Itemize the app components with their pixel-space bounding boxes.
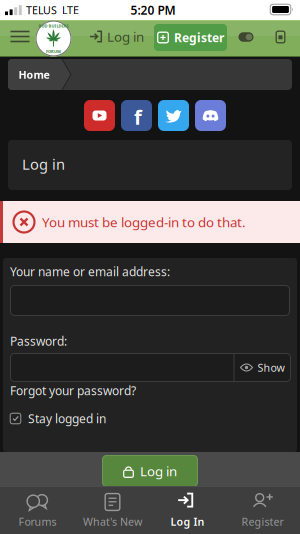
button[interactable] xyxy=(84,100,115,131)
button[interactable]: What's New xyxy=(75,486,150,534)
button[interactable]: Forgot your password? xyxy=(10,382,136,398)
staticText: Home xyxy=(18,67,49,82)
staticText: You must be logged-in to do that. xyxy=(42,213,246,231)
staticText: Stay logged in xyxy=(28,410,106,426)
button[interactable]: Log in xyxy=(102,455,197,486)
button[interactable]: Register xyxy=(225,486,300,534)
staticText: Your name or email address: xyxy=(10,263,170,279)
button[interactable]: Log in xyxy=(90,28,144,45)
button[interactable]: Register xyxy=(154,24,227,51)
button[interactable] xyxy=(238,32,253,42)
button[interactable] xyxy=(10,30,29,42)
staticText: TELUS xyxy=(26,3,57,17)
staticText: Log In xyxy=(170,514,204,529)
staticText: Forgot your password? xyxy=(10,382,136,398)
button[interactable]: f xyxy=(121,100,152,131)
staticText: Register xyxy=(174,29,224,45)
staticText: LTE xyxy=(62,3,79,17)
button[interactable]: Show xyxy=(234,353,291,382)
staticText: Show xyxy=(257,360,284,375)
staticText: FORUM xyxy=(46,49,61,54)
staticText: 5:20 PM xyxy=(130,2,175,18)
staticText: Log in xyxy=(22,154,65,174)
staticText: What's New xyxy=(83,514,142,529)
staticText: Forums xyxy=(18,514,56,529)
staticText: Password: xyxy=(10,333,67,349)
staticText: BUD BUILDERS xyxy=(38,23,68,29)
button[interactable]: Log In xyxy=(150,486,225,534)
button[interactable] xyxy=(275,30,285,43)
button[interactable]: BUD BUILDERS xyxy=(35,20,71,56)
button[interactable] xyxy=(158,100,189,131)
staticText: Log in xyxy=(107,28,144,45)
staticText: Register xyxy=(241,514,283,529)
button[interactable]: Stay logged in xyxy=(10,410,106,426)
staticText: Log in xyxy=(140,462,177,480)
button[interactable] xyxy=(195,100,226,131)
staticText: f xyxy=(134,104,142,130)
button[interactable]: Forums xyxy=(0,486,75,534)
button[interactable]: Home xyxy=(8,59,71,90)
